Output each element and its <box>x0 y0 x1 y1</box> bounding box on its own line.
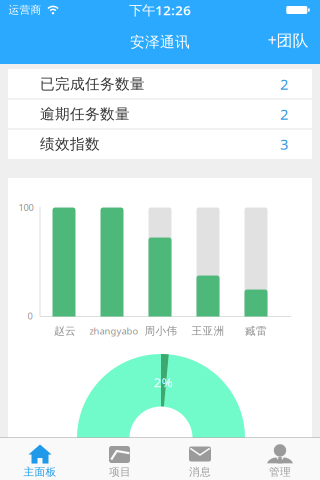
staticText: 周小伟 <box>144 324 177 337</box>
staticText: 消息 <box>189 465 211 478</box>
staticText: 0 <box>27 310 32 322</box>
staticText: 100 <box>18 201 33 214</box>
staticText: 2% <box>153 373 172 391</box>
staticText: 3 <box>280 134 288 154</box>
staticText: 安泽通讯 <box>130 33 190 51</box>
button[interactable]: +团队 <box>260 23 316 57</box>
staticText: +团队 <box>267 29 308 51</box>
button[interactable]: 已完成任务数量 <box>8 69 312 99</box>
staticText: 2 <box>280 74 288 94</box>
staticText: 主面板 <box>23 465 56 478</box>
button[interactable]: 消息 <box>160 438 240 480</box>
staticText: zhangyabo <box>89 325 138 337</box>
staticText: 赵云 <box>54 324 76 337</box>
button[interactable]: 逾期任务数量 <box>8 99 312 129</box>
staticText: 绩效指数 <box>40 135 100 153</box>
staticText: 下午12:26 <box>129 1 191 19</box>
staticText: 逾期任务数量 <box>40 105 130 123</box>
button[interactable]: 绩效指数 <box>8 129 312 159</box>
staticText: 已完成任务数量 <box>40 75 145 93</box>
staticText: 管理 <box>269 465 291 478</box>
button[interactable]: 管理 <box>240 438 320 480</box>
staticText: 运营商 <box>8 3 41 16</box>
button[interactable]: 项目 <box>80 438 160 480</box>
button[interactable]: 主面板 <box>0 438 80 480</box>
staticText: 项目 <box>109 465 131 478</box>
staticText: 臧雷 <box>245 324 267 337</box>
staticText: 2 <box>280 104 288 124</box>
staticText: 王亚洲 <box>191 324 224 337</box>
